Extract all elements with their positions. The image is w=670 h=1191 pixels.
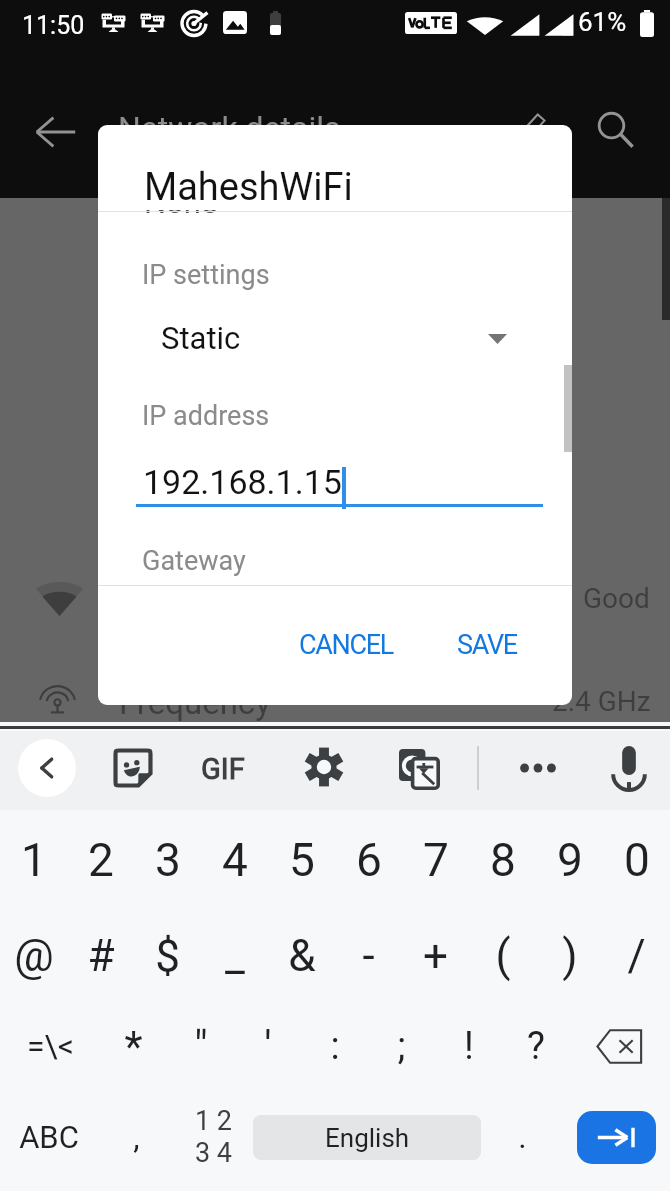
button[interactable]: Back bbox=[30, 108, 82, 156]
staticText: ! bbox=[464, 1024, 474, 1069]
staticText: @ bbox=[14, 930, 54, 982]
staticText: ( bbox=[495, 930, 511, 982]
staticText: Gateway bbox=[142, 545, 246, 577]
staticText: 1 2 bbox=[195, 1105, 233, 1137]
button[interactable]: Next bbox=[577, 1111, 656, 1164]
staticText: $ bbox=[155, 930, 180, 982]
staticText: ? bbox=[527, 1024, 545, 1069]
staticText: - bbox=[362, 930, 375, 982]
staticText: : bbox=[330, 1024, 340, 1069]
button[interactable]: Edit bbox=[518, 107, 552, 141]
staticText: MaheshWiFi bbox=[144, 165, 353, 210]
staticText: 11:50 bbox=[22, 11, 85, 40]
staticText: English bbox=[325, 1123, 410, 1153]
staticText: * bbox=[124, 1022, 143, 1071]
button[interactable]: SAVE bbox=[441, 619, 533, 671]
button[interactable]: 2 bbox=[67, 818, 134, 902]
staticText: 2.4 GHz bbox=[552, 685, 651, 718]
staticText: & bbox=[288, 930, 316, 982]
staticText: " bbox=[194, 1022, 208, 1071]
button[interactable]: ( bbox=[469, 914, 536, 998]
staticText: _ bbox=[225, 930, 245, 982]
button[interactable]: CANCEL bbox=[283, 619, 410, 671]
staticText: SAVE bbox=[457, 629, 517, 661]
staticText: IP settings bbox=[142, 259, 270, 291]
staticText: 3 bbox=[155, 833, 181, 887]
staticText: Frequency bbox=[119, 683, 271, 722]
staticText: 1 bbox=[21, 833, 47, 887]
button[interactable]: 0 bbox=[603, 818, 670, 902]
button[interactable]: Numbers bbox=[174, 1092, 253, 1182]
button[interactable]: 8 bbox=[469, 818, 536, 902]
staticText: Static bbox=[161, 320, 241, 356]
staticText: + bbox=[423, 930, 448, 982]
button[interactable]: Settings bbox=[305, 748, 343, 786]
staticText: 0 bbox=[624, 833, 650, 887]
staticText: ) bbox=[562, 930, 578, 982]
staticText: 2 bbox=[88, 833, 114, 887]
button[interactable]: - bbox=[335, 914, 402, 998]
button[interactable]: GIF bbox=[201, 752, 245, 786]
staticText: ; bbox=[397, 1024, 406, 1069]
button[interactable]: Stickers bbox=[114, 749, 152, 787]
button[interactable]: ; bbox=[368, 1004, 435, 1088]
button[interactable]: " bbox=[167, 1004, 234, 1088]
button[interactable]: =\< bbox=[0, 1004, 100, 1088]
button[interactable]: 6 bbox=[335, 818, 402, 902]
button[interactable]: & bbox=[268, 914, 335, 998]
staticText: CANCEL bbox=[299, 629, 394, 661]
button[interactable]: # bbox=[67, 914, 134, 998]
button[interactable]: 3 bbox=[134, 818, 201, 902]
button[interactable]: Translate bbox=[399, 749, 439, 789]
staticText: ' bbox=[264, 1022, 272, 1071]
staticText: 8 bbox=[490, 833, 516, 887]
button[interactable]: 7 bbox=[402, 818, 469, 902]
staticText: 4 bbox=[222, 833, 248, 887]
button[interactable]: _ bbox=[201, 914, 268, 998]
staticText: 61% bbox=[578, 7, 627, 37]
button[interactable]: : bbox=[301, 1004, 368, 1088]
staticText: None bbox=[144, 184, 218, 220]
button[interactable]: ? bbox=[502, 1004, 569, 1088]
staticText: =\< bbox=[27, 1027, 74, 1065]
staticText: Good bbox=[583, 582, 650, 615]
staticText: 7 bbox=[423, 833, 449, 887]
button[interactable]: $ bbox=[134, 914, 201, 998]
button[interactable]: * bbox=[100, 1004, 167, 1088]
staticText: 192.168.1.15 bbox=[143, 462, 342, 502]
button[interactable]: 5 bbox=[268, 818, 335, 902]
button[interactable]: Backspace bbox=[569, 1004, 670, 1088]
staticText: 9 bbox=[557, 833, 583, 887]
button[interactable]: ABC bbox=[0, 1092, 98, 1182]
button[interactable]: More options bbox=[514, 751, 562, 785]
button[interactable]: ! bbox=[435, 1004, 502, 1088]
staticText: Network details bbox=[118, 109, 341, 147]
staticText: 6 bbox=[356, 833, 382, 887]
staticText: / bbox=[627, 930, 646, 982]
button[interactable]: , bbox=[98, 1092, 174, 1182]
staticText: 5 bbox=[289, 833, 315, 887]
button[interactable]: 1 bbox=[0, 818, 67, 902]
button[interactable]: @ bbox=[0, 914, 67, 998]
button[interactable]: . bbox=[481, 1092, 563, 1182]
button[interactable]: ) bbox=[536, 914, 603, 998]
staticText: ABC bbox=[19, 1119, 79, 1155]
button[interactable]: Back bbox=[18, 739, 76, 797]
button[interactable]: 4 bbox=[201, 818, 268, 902]
button[interactable]: / bbox=[603, 914, 670, 998]
button[interactable]: + bbox=[402, 914, 469, 998]
staticText: # bbox=[87, 930, 115, 982]
staticText: 3 4 bbox=[195, 1137, 233, 1169]
button[interactable]: Search bbox=[593, 108, 637, 154]
button[interactable]: Voice input bbox=[611, 746, 647, 790]
button[interactable]: ' bbox=[234, 1004, 301, 1088]
staticText: GIF bbox=[201, 752, 245, 786]
staticText: . bbox=[518, 1118, 527, 1156]
staticText: IP address bbox=[142, 400, 270, 432]
button[interactable]: 9 bbox=[536, 818, 603, 902]
staticText: , bbox=[133, 1118, 140, 1156]
button[interactable]: English bbox=[253, 1115, 481, 1160]
